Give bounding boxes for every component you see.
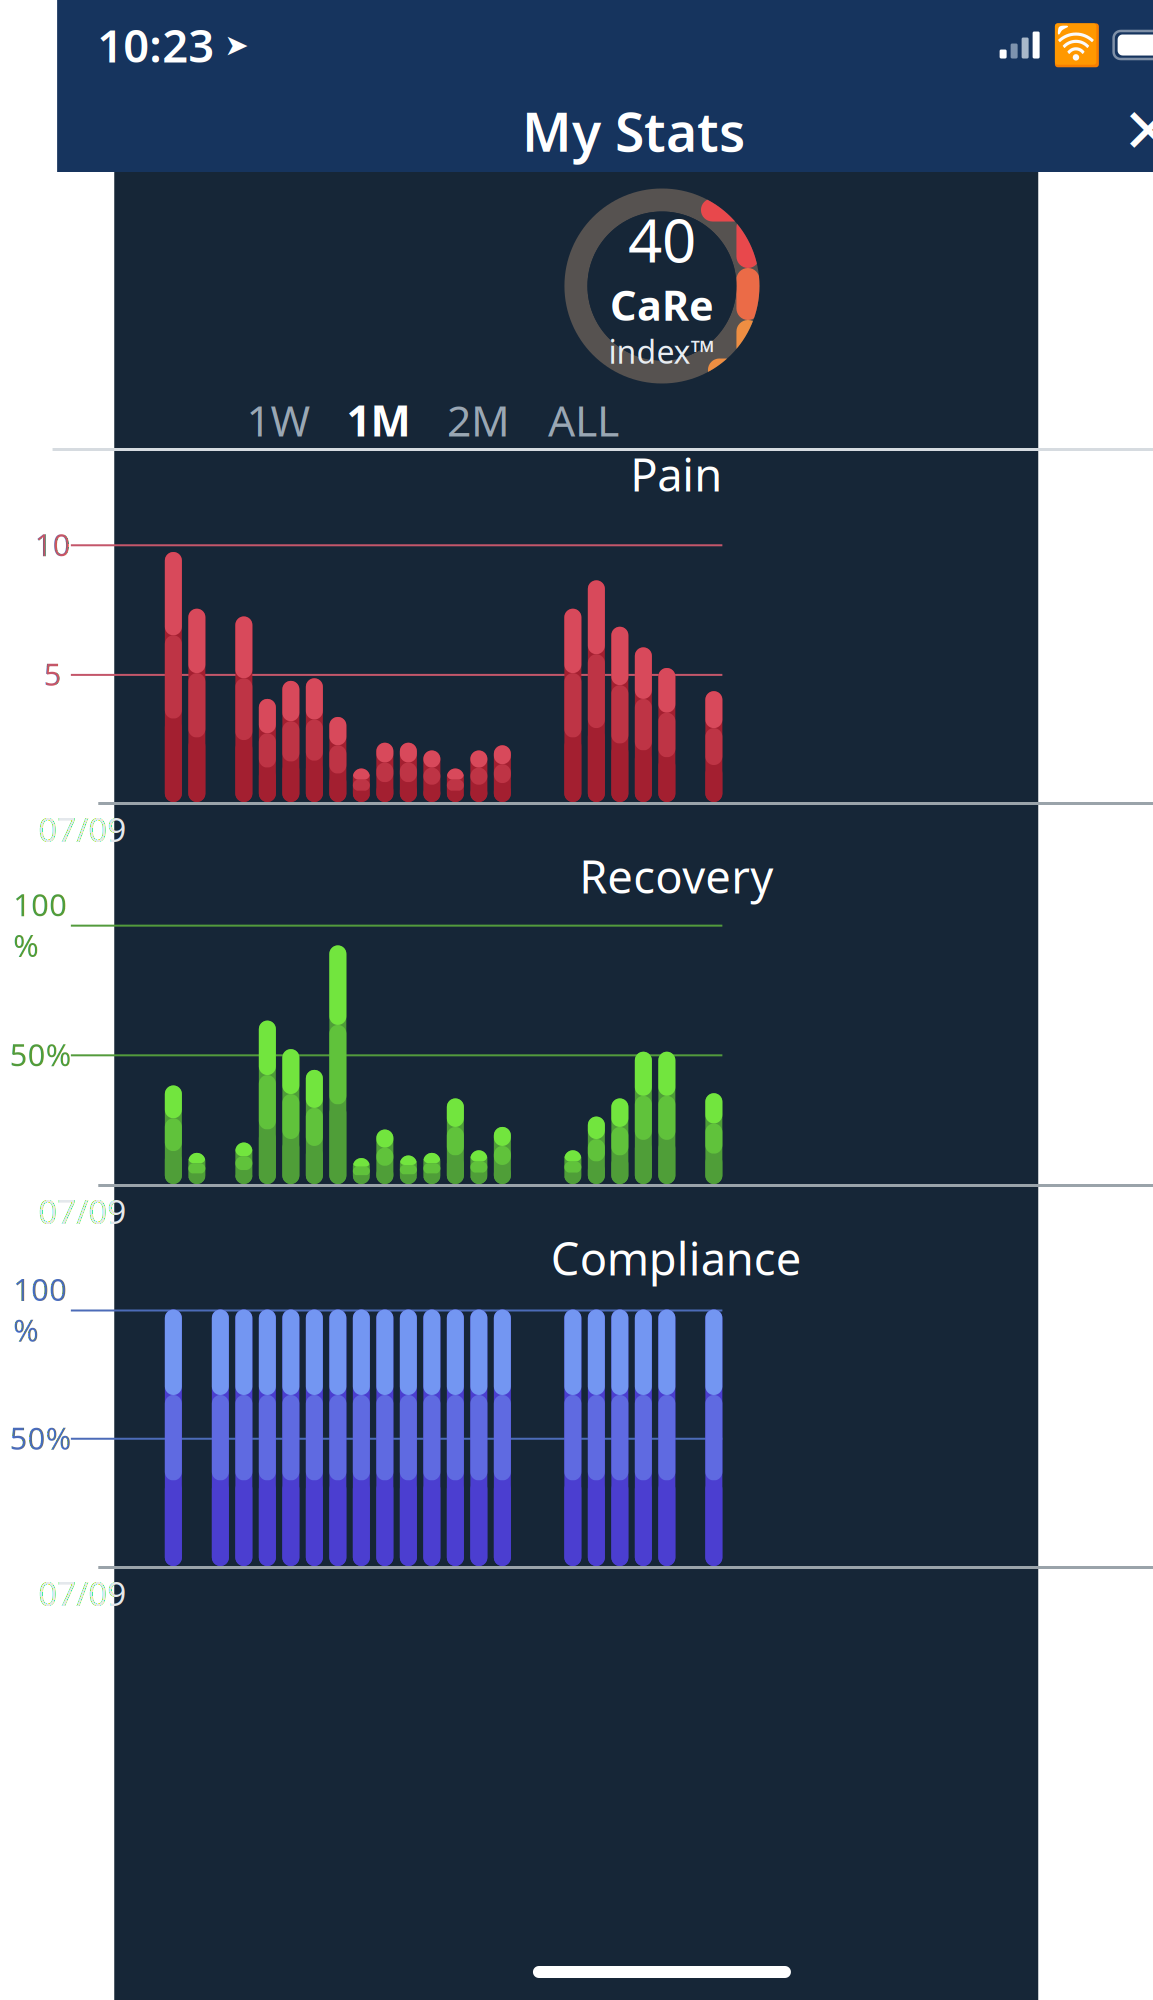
- button[interactable]: 1M: [329, 392, 429, 448]
- staticText: 🛜: [1052, 22, 1102, 68]
- staticText: index™: [608, 330, 715, 372]
- staticText: 50%: [10, 1417, 71, 1458]
- staticText: CaRe: [610, 277, 714, 332]
- staticText: 07/09: [38, 807, 126, 851]
- staticText: ➤: [224, 28, 249, 62]
- staticText: 1M: [347, 392, 411, 448]
- staticText: ALL: [548, 392, 619, 448]
- button[interactable]: ALL: [529, 392, 639, 448]
- staticText: My Stats: [522, 96, 745, 166]
- staticText: 07/09: [38, 1189, 126, 1233]
- staticText: 2M: [447, 392, 510, 448]
- staticText: Pain: [630, 444, 722, 504]
- staticText: 50%: [10, 1034, 71, 1075]
- staticText: ✕: [1122, 96, 1153, 166]
- button[interactable]: 1W: [229, 392, 329, 448]
- staticText: 10: [35, 524, 71, 565]
- staticText: Compliance: [551, 1228, 802, 1288]
- button[interactable]: 2M: [429, 392, 529, 448]
- staticText: 5: [44, 653, 62, 694]
- staticText: 07/09: [38, 1571, 126, 1615]
- staticText: Recovery: [579, 846, 773, 906]
- button[interactable]: Close: [1108, 91, 1153, 171]
- staticText: 40: [628, 199, 696, 279]
- staticText: 100%: [13, 1269, 67, 1350]
- staticText: 100%: [13, 884, 67, 965]
- staticText: 1W: [247, 392, 311, 448]
- staticText: 10:23: [97, 15, 214, 75]
